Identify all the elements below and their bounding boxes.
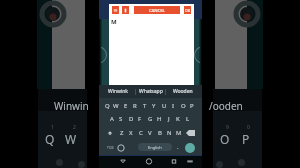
button[interactable]: Enter: [185, 143, 195, 153]
button[interactable]: Shift: [106, 129, 114, 137]
button[interactable]: Hide keyboard: [186, 157, 194, 165]
staticText: M: [176, 129, 182, 137]
staticText: OK: [185, 8, 191, 13]
staticText: Q: [45, 131, 55, 147]
staticText: 9: [226, 124, 229, 131]
button[interactable]: Period: [174, 143, 182, 151]
staticText: /ooden: [209, 99, 243, 113]
staticText: O: [181, 102, 186, 110]
staticText: ?123: [107, 146, 114, 150]
button[interactable]: O: [178, 101, 188, 111]
staticText: V: [148, 129, 152, 137]
button[interactable]: OK: [184, 6, 191, 14]
staticText: Y: [152, 102, 156, 110]
button[interactable]: L: [183, 114, 193, 124]
button[interactable]: T: [140, 101, 150, 111]
button[interactable]: Backspace: [186, 130, 195, 136]
button[interactable]: U: [159, 101, 169, 111]
staticText: 2: [73, 124, 76, 131]
staticText: Winwin: [54, 99, 89, 113]
button[interactable]: Home: [145, 157, 153, 165]
staticText: P: [190, 102, 194, 110]
staticText: .: [177, 143, 179, 151]
button[interactable]: Undo: [112, 6, 119, 14]
staticText: C: [139, 129, 143, 137]
staticText: O: [220, 131, 230, 147]
staticText: 0: [247, 124, 250, 131]
staticText: T: [143, 102, 147, 110]
staticText: Z: [120, 129, 124, 137]
staticText: Whatsapp: [139, 88, 163, 95]
button[interactable]: J: [164, 114, 174, 124]
button[interactable]: D: [126, 114, 136, 124]
staticText: Wooden: [173, 88, 193, 95]
staticText: CANCEL: [149, 8, 165, 13]
button[interactable]: Emoji: [117, 144, 125, 152]
button[interactable]: C: [136, 128, 146, 138]
staticText: L: [186, 115, 190, 123]
button[interactable]: A: [107, 114, 117, 124]
staticText: U: [162, 102, 167, 110]
staticText: N: [167, 129, 172, 137]
staticText: W: [113, 102, 119, 110]
button[interactable]: S: [116, 114, 126, 124]
button[interactable]: F: [135, 114, 145, 124]
button[interactable]: W: [111, 101, 121, 111]
staticText: F: [138, 115, 142, 123]
button[interactable]: Y: [149, 101, 159, 111]
button[interactable]: Back: [119, 157, 127, 165]
staticText: H: [157, 115, 162, 123]
button[interactable]: N: [164, 128, 174, 138]
button[interactable]: E: [121, 101, 131, 111]
button[interactable]: M: [174, 128, 184, 138]
staticText: 1: [51, 124, 54, 131]
staticText: B: [158, 129, 162, 137]
button[interactable]: Wooden: [166, 87, 199, 96]
button[interactable]: CANCEL: [134, 6, 180, 14]
staticText: Winwink: [108, 88, 129, 95]
button[interactable]: K: [173, 114, 183, 124]
staticText: English: [148, 145, 162, 150]
staticText: D: [129, 115, 134, 123]
button[interactable]: Recents: [170, 157, 178, 165]
staticText: S: [119, 115, 123, 123]
button[interactable]: G: [145, 114, 155, 124]
staticText: A: [110, 115, 114, 123]
button[interactable]: Winwink: [102, 87, 135, 96]
button[interactable]: I: [168, 101, 178, 111]
staticText: I: [172, 102, 175, 110]
staticText: R: [133, 102, 137, 110]
button[interactable]: B: [155, 128, 165, 138]
button[interactable]: Z: [117, 128, 127, 138]
staticText: E: [124, 102, 128, 110]
button[interactable]: P: [187, 101, 197, 111]
button[interactable]: English: [138, 143, 172, 151]
button[interactable]: X: [126, 128, 136, 138]
staticText: W: [65, 131, 77, 147]
button[interactable]: Q: [102, 101, 112, 111]
staticText: G: [148, 115, 153, 123]
button[interactable]: Delete: [122, 6, 129, 14]
button[interactable]: H: [154, 114, 164, 124]
staticText: P: [242, 131, 250, 147]
staticText: Q: [105, 102, 110, 110]
button[interactable]: V: [145, 128, 155, 138]
button[interactable]: Symbols: [105, 143, 115, 153]
staticText: J: [168, 115, 170, 123]
staticText: M: [111, 18, 117, 26]
staticText: K: [176, 115, 180, 123]
staticText: X: [129, 129, 133, 137]
button[interactable]: R: [130, 101, 140, 111]
button[interactable]: Whatsapp: [136, 87, 165, 96]
